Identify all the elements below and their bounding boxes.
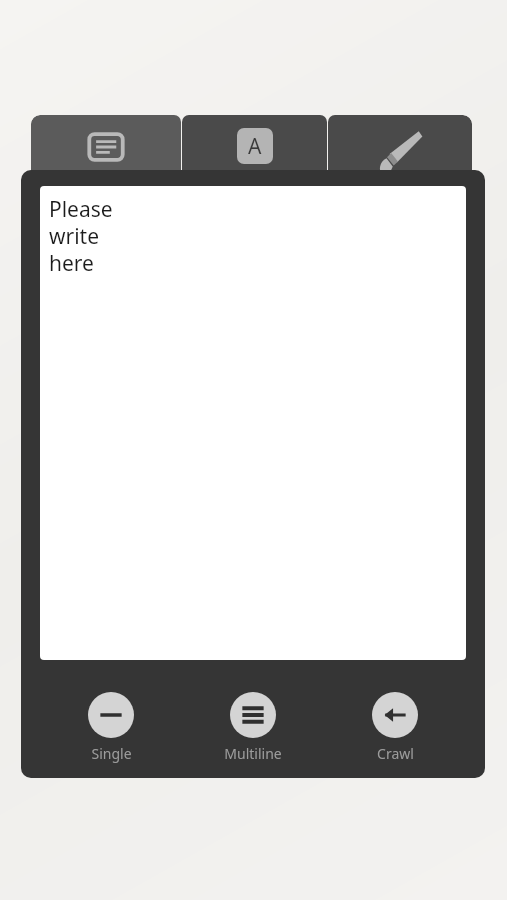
button[interactable]: Crawl xyxy=(343,690,447,765)
staticText: A xyxy=(248,132,262,161)
button[interactable]: Please write here xyxy=(40,186,466,660)
staticText: Please write here xyxy=(49,195,113,277)
button[interactable]: Brush colour xyxy=(328,115,472,177)
button[interactable]: Multiline xyxy=(201,690,305,765)
staticText: Multiline xyxy=(224,744,282,763)
button[interactable]: Text document xyxy=(31,115,181,177)
staticText: Crawl xyxy=(377,744,414,763)
button[interactable]: Single xyxy=(59,690,163,765)
staticText: Single xyxy=(91,744,132,763)
button[interactable]: Font xyxy=(182,115,327,177)
